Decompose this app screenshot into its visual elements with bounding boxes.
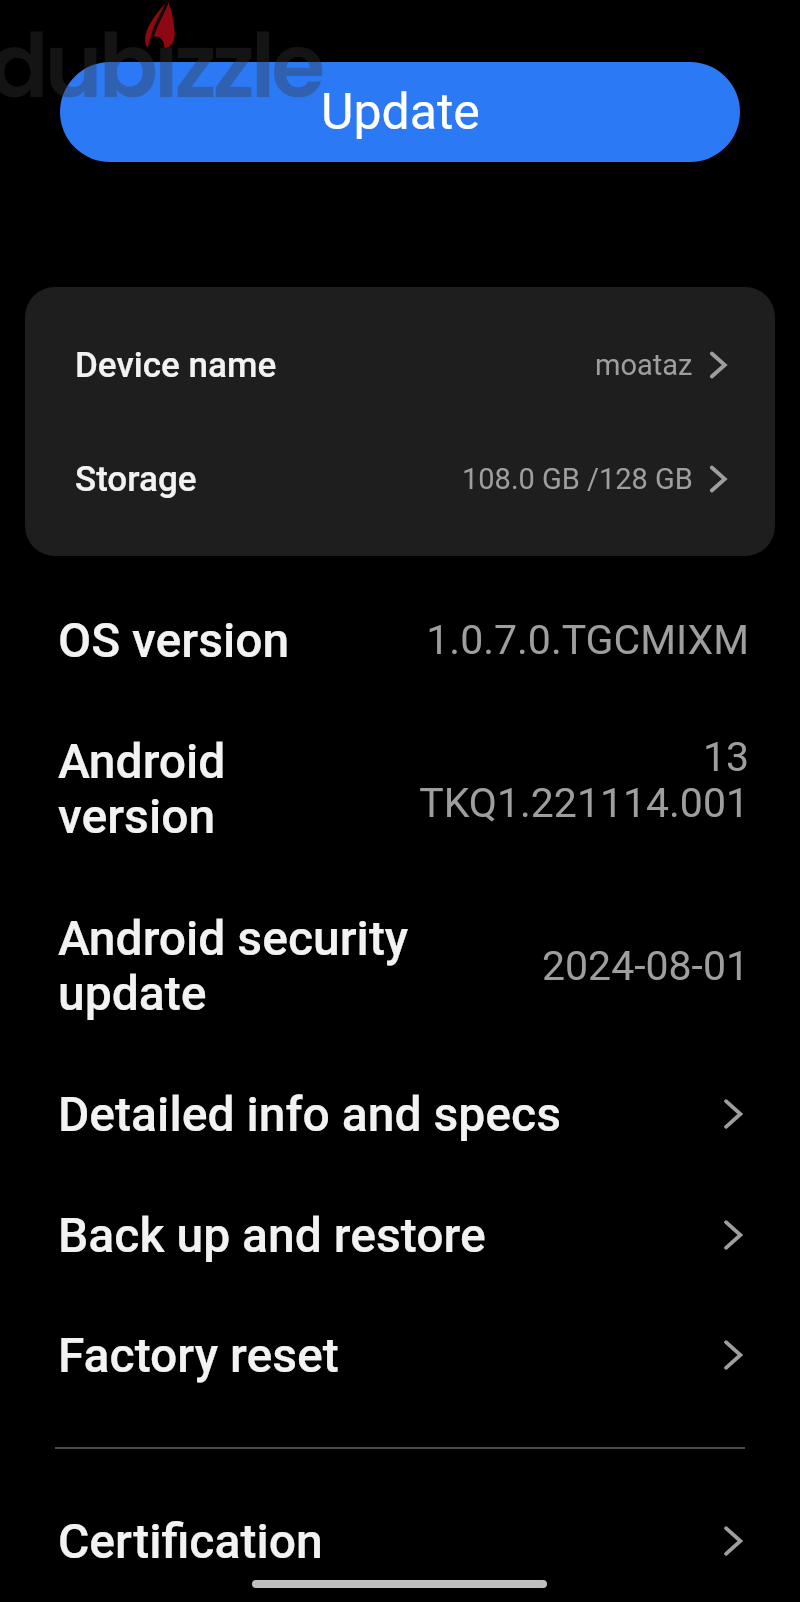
staticText: Android security update (58, 910, 541, 1022)
staticText: Back up and restore (58, 1207, 714, 1263)
staticText: Device name (75, 345, 277, 386)
button[interactable]: Update (60, 62, 740, 162)
button[interactable]: Detailed info and specs (0, 1053, 800, 1174)
staticText: 13 TKQ1.221114.001 (419, 733, 749, 827)
staticText: Factory reset (58, 1327, 714, 1383)
button[interactable]: Android version (0, 733, 800, 910)
staticText: Android version (58, 733, 419, 845)
staticText: OS version (58, 612, 426, 668)
button[interactable]: Back up and restore (0, 1175, 800, 1295)
staticText: 1.0.7.0.TGCMIXM (426, 616, 749, 664)
staticText: moataz (595, 348, 693, 382)
button[interactable]: Factory reset (0, 1294, 800, 1415)
button[interactable]: Storage (25, 422, 775, 536)
button[interactable]: OS version (0, 579, 800, 700)
staticText: Certification (58, 1513, 714, 1569)
staticText: Storage (75, 459, 197, 500)
staticText: 2024-08-01 (541, 942, 749, 990)
button[interactable]: Android security update (0, 878, 800, 1054)
button[interactable]: Certification (0, 1480, 800, 1601)
staticText: Detailed info and specs (58, 1086, 714, 1142)
staticText: dubizzle (0, 5, 322, 128)
button[interactable]: Device name (25, 308, 775, 422)
staticText: Update (321, 83, 480, 142)
staticText: 108.0 GB /128 GB (462, 462, 693, 496)
